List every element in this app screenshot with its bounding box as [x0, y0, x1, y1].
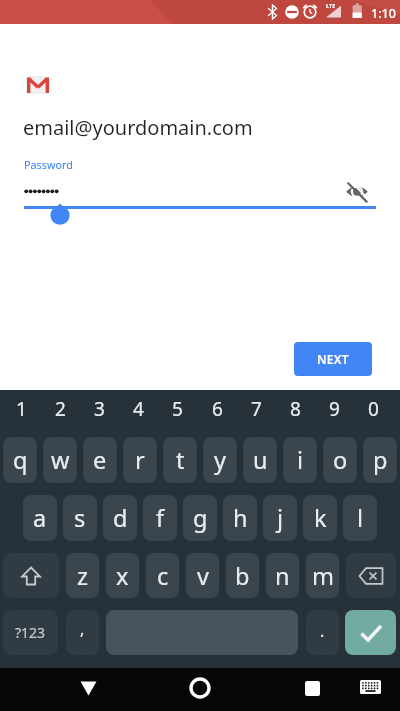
button[interactable]	[72, 672, 104, 704]
button[interactable]: 1	[2, 390, 41, 428]
button[interactable]: .	[306, 610, 339, 655]
button[interactable]: ?123	[3, 610, 58, 655]
button[interactable]: l	[343, 495, 377, 541]
button[interactable]: 0	[354, 390, 393, 428]
staticText: 7	[251, 396, 262, 422]
button[interactable]: 8	[276, 390, 315, 428]
button[interactable]: 4	[119, 390, 158, 428]
staticText: 8	[290, 396, 301, 422]
staticText: z	[77, 560, 89, 592]
staticText: i	[297, 444, 304, 476]
staticText: a	[33, 502, 47, 534]
staticText: f	[156, 502, 165, 534]
button[interactable]: 2	[41, 390, 80, 428]
button[interactable]: k	[303, 495, 337, 541]
button[interactable]: 3	[80, 390, 119, 428]
button[interactable]: j	[263, 495, 297, 541]
staticText: h	[233, 502, 248, 534]
staticText: m	[312, 560, 334, 592]
button[interactable]: c	[146, 553, 179, 598]
staticText: s	[74, 502, 86, 534]
button[interactable]: g	[183, 495, 217, 541]
staticText: 2	[55, 396, 66, 422]
staticText: e	[93, 444, 107, 476]
staticText: j	[277, 502, 284, 534]
staticText: ,	[80, 618, 85, 640]
staticText: 5	[172, 396, 183, 422]
staticText: .	[320, 620, 325, 642]
staticText: k	[314, 502, 327, 534]
button[interactable]: w	[43, 437, 77, 483]
button[interactable]: i	[283, 437, 317, 483]
button[interactable]: r	[123, 437, 157, 483]
staticText: 1	[16, 396, 27, 422]
staticText: v	[197, 560, 209, 592]
staticText: 0	[368, 396, 379, 422]
staticText: 3	[94, 396, 105, 422]
button[interactable]: y	[203, 437, 237, 483]
staticText: u	[253, 444, 268, 476]
staticText: c	[157, 560, 169, 592]
staticText: g	[193, 502, 208, 534]
button[interactable]	[3, 553, 59, 598]
staticText: y	[214, 444, 226, 476]
button[interactable]: m	[306, 553, 339, 598]
staticText: LTE	[326, 2, 336, 9]
staticText: d	[113, 502, 128, 534]
button[interactable]: z	[66, 553, 99, 598]
staticText: Password	[24, 157, 73, 172]
button[interactable]	[296, 672, 328, 704]
staticText: n	[275, 560, 290, 592]
button[interactable]: h	[223, 495, 257, 541]
button[interactable]	[355, 673, 386, 701]
button[interactable]: e	[83, 437, 117, 483]
button[interactable]: 7	[237, 390, 276, 428]
staticText: x	[116, 560, 129, 592]
staticText: 6	[212, 396, 223, 422]
staticText: w	[51, 444, 70, 476]
button[interactable]: x	[106, 553, 139, 598]
staticText: 9	[329, 396, 340, 422]
button[interactable]: b	[226, 553, 259, 598]
staticText: o	[333, 444, 348, 476]
staticText: NEXT	[317, 351, 349, 367]
staticText: q	[13, 444, 28, 476]
staticText: 1:10	[371, 5, 396, 22]
button[interactable]: 6	[198, 390, 237, 428]
staticText: email@yourdomain.com	[23, 114, 253, 141]
button[interactable]	[344, 179, 370, 205]
button[interactable]: s	[63, 495, 97, 541]
button[interactable]	[346, 553, 396, 598]
staticText: ?123	[15, 623, 46, 642]
button[interactable]: 9	[315, 390, 354, 428]
staticText: l	[357, 502, 364, 534]
button[interactable]: p	[363, 437, 397, 483]
button[interactable]: q	[3, 437, 37, 483]
button[interactable]: u	[243, 437, 277, 483]
staticText: t	[176, 444, 185, 476]
button[interactable]	[345, 610, 396, 655]
staticText: 4	[133, 396, 144, 422]
staticText: b	[235, 560, 250, 592]
button[interactable]: 5	[158, 390, 197, 428]
button[interactable]: v	[186, 553, 219, 598]
staticText: p	[373, 444, 388, 476]
button[interactable]: o	[323, 437, 357, 483]
button[interactable]: NEXT	[294, 342, 372, 376]
button[interactable]: ,	[66, 610, 99, 655]
button[interactable]: d	[103, 495, 137, 541]
button[interactable]: n	[266, 553, 299, 598]
button[interactable]: f	[143, 495, 177, 541]
button[interactable]: t	[163, 437, 197, 483]
button[interactable]: a	[23, 495, 57, 541]
button[interactable]	[184, 672, 216, 704]
staticText: r	[135, 444, 145, 476]
